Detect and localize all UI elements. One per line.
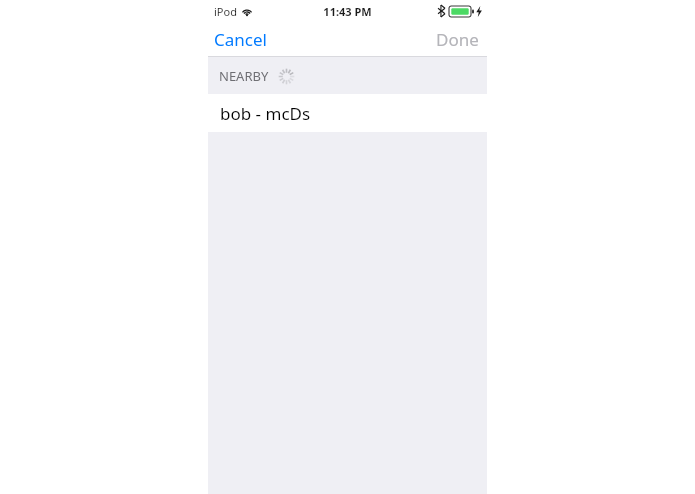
staticText: iPod: [214, 4, 237, 19]
staticText: bob - mcDs: [220, 102, 311, 125]
button[interactable]: bob - mcDs: [208, 94, 487, 132]
button[interactable]: Done: [428, 24, 487, 55]
staticText: 11:43 PM: [323, 4, 372, 19]
staticText: Done: [436, 28, 479, 51]
staticText: NEARBY: [219, 67, 269, 85]
staticText: Cancel: [214, 28, 267, 51]
button[interactable]: Cancel: [208, 24, 273, 55]
